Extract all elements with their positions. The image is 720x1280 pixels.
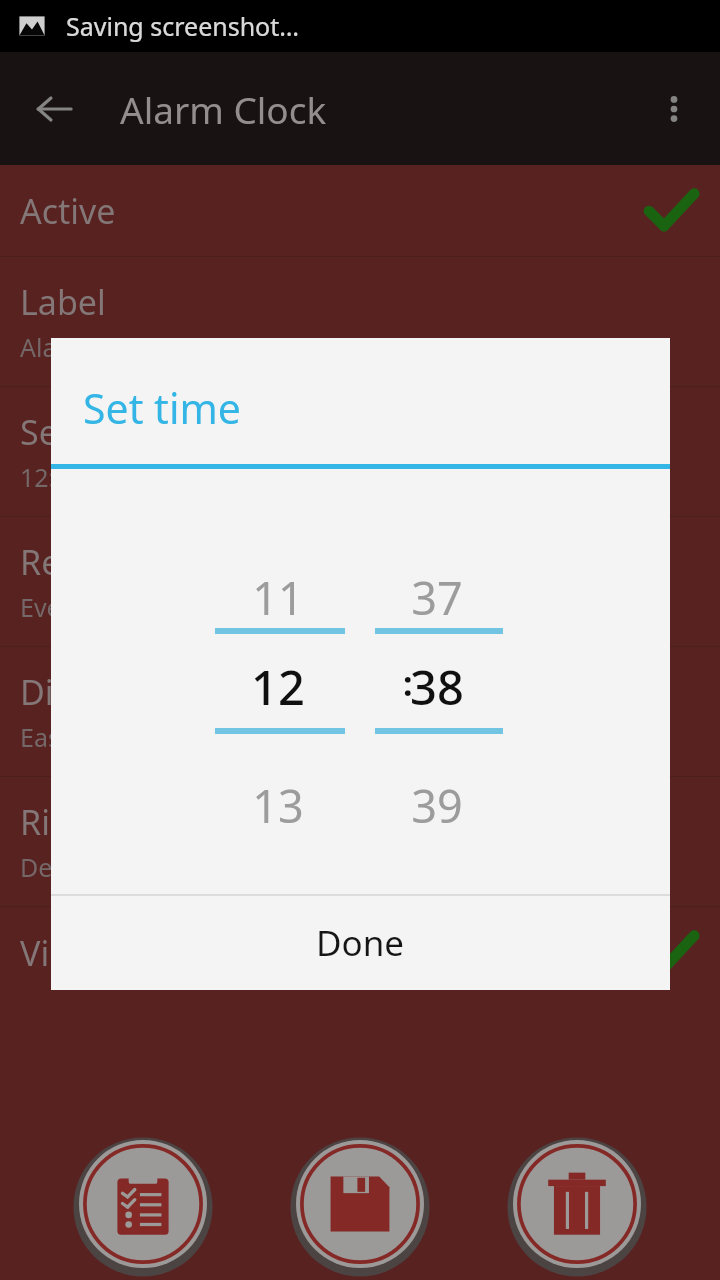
- staticText: Dismiss: [20, 669, 144, 715]
- staticText: Easy: [20, 720, 73, 754]
- staticText: 12:38: [20, 460, 84, 494]
- button[interactable]: Vibrate: [0, 907, 720, 998]
- staticText: 38: [377, 655, 497, 719]
- button[interactable]: Repeat: [0, 517, 720, 646]
- staticText: 13: [218, 775, 338, 836]
- button[interactable]: Minute: [361, 518, 521, 848]
- staticText: Active: [20, 188, 116, 234]
- button[interactable]: Delete: [503, 1130, 651, 1278]
- staticText: Repeat: [20, 539, 132, 585]
- button[interactable]: Back: [0, 52, 108, 165]
- staticText: Vibrate: [20, 930, 134, 976]
- button[interactable]: Hour: [201, 518, 361, 848]
- staticText: Every day: [20, 590, 133, 624]
- staticText: Alarm Clock: [20, 330, 160, 364]
- button[interactable]: More options: [628, 52, 720, 165]
- staticText: Default: [20, 850, 106, 884]
- staticText: 11: [218, 567, 338, 628]
- staticText: Label: [20, 279, 106, 325]
- button[interactable]: Ringtone: [0, 777, 720, 906]
- staticText: Done: [316, 919, 405, 967]
- staticText: Saving screenshot…: [66, 9, 300, 43]
- staticText: :: [403, 660, 413, 706]
- button[interactable]: Active: [0, 165, 720, 256]
- staticText: Alarm Clock: [120, 84, 327, 134]
- button[interactable]: List alarms: [69, 1130, 217, 1278]
- button[interactable]: Set time: [0, 387, 720, 516]
- button[interactable]: Label: [0, 257, 720, 386]
- staticText: 39: [377, 775, 497, 836]
- staticText: 37: [377, 567, 497, 628]
- button[interactable]: Save: [286, 1130, 434, 1278]
- staticText: 12: [218, 655, 338, 719]
- button[interactable]: Done: [51, 896, 670, 990]
- staticText: Set time: [83, 380, 241, 436]
- button[interactable]: Dismiss: [0, 647, 720, 776]
- staticText: Set time: [20, 409, 151, 455]
- staticText: Ringtone: [20, 799, 165, 845]
